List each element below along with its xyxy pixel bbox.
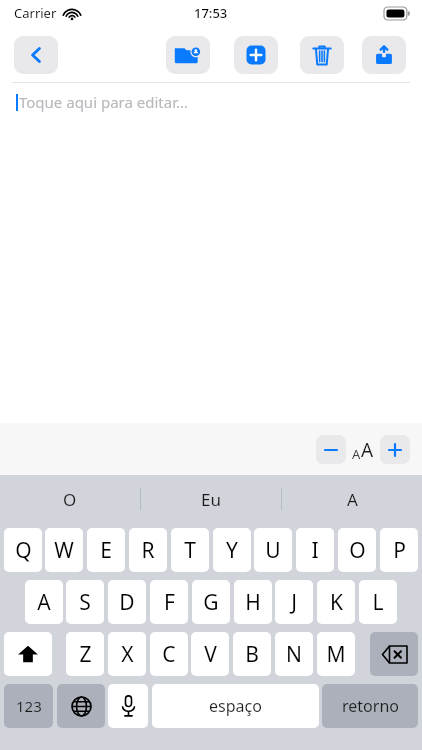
staticText: A [361,437,374,463]
staticText: retorno [342,695,399,717]
button[interactable]: Increase text size [380,435,410,464]
button[interactable]: L [359,580,397,624]
staticText: F [164,588,175,617]
button[interactable]: V [191,632,229,676]
button[interactable]: M [317,632,355,676]
staticText: X [121,640,134,669]
button[interactable]: S [66,580,104,624]
button[interactable]: C [150,632,188,676]
staticText: S [79,588,91,617]
button[interactable]: U [254,528,292,572]
staticText: C [162,640,176,669]
button[interactable]: Backspace [370,632,418,676]
staticText: Y [226,536,238,565]
staticText: J [291,588,297,617]
button[interactable]: K [317,580,355,624]
button[interactable]: Delete [300,36,344,74]
button[interactable]: Q [4,528,42,572]
button[interactable]: T [171,528,209,572]
button[interactable]: Shift [4,632,52,676]
button[interactable]: H [234,580,272,624]
button[interactable]: G [192,580,230,624]
button[interactable]: Back [14,36,58,74]
button[interactable]: F [150,580,188,624]
staticText: R [141,536,155,565]
staticText: M [326,640,346,669]
staticText: 123 [16,696,42,716]
button[interactable]: Eu [141,475,281,523]
button[interactable]: Z [66,632,104,676]
staticText: B [245,640,259,669]
button[interactable]: I [296,528,334,572]
staticText: Z [79,640,92,669]
staticText: K [330,588,343,617]
staticText: espaço [209,695,262,717]
staticText: O [349,536,366,565]
staticText: N [286,640,302,669]
button[interactable]: N [275,632,313,676]
staticText: O [63,488,77,511]
staticText: U [265,536,281,565]
staticText: Carrier [14,4,57,22]
staticText: Toque aqui para editar... [19,92,188,112]
button[interactable]: R [129,528,167,572]
button[interactable]: O [338,528,376,572]
button[interactable]: Dictate [108,684,148,728]
staticText: A [352,445,361,463]
button[interactable]: D [108,580,146,624]
button[interactable]: P [380,528,418,572]
staticText: E [100,536,112,565]
button[interactable]: Decrease text size [316,435,346,464]
staticText: Eu [201,488,221,511]
button[interactable]: A [282,475,422,523]
staticText: 17:53 [194,4,228,22]
button[interactable]: espaço [152,684,319,728]
staticText: Q [15,536,32,565]
staticText: A [37,588,51,617]
button[interactable]: Add [234,36,278,74]
staticText: P [393,536,406,565]
staticText: D [119,588,135,617]
staticText: A [347,488,358,511]
button[interactable]: Change keyboard [57,684,105,728]
button[interactable]: J [275,580,313,624]
button[interactable]: X [108,632,146,676]
staticText: H [245,588,261,617]
staticText: L [372,588,384,617]
staticText: T [184,536,196,565]
button[interactable]: E [87,528,125,572]
button[interactable]: B [233,632,271,676]
staticText: W [54,536,74,565]
button[interactable]: Folder [166,36,210,74]
button[interactable]: retorno [322,684,418,728]
button[interactable]: 123 [4,684,53,728]
button[interactable]: A [25,580,63,624]
staticText: V [204,640,217,669]
button[interactable]: Y [213,528,251,572]
staticText: I [311,536,319,565]
staticText: G [203,588,219,617]
button[interactable]: W [45,528,83,572]
button[interactable]: Share [362,36,406,74]
button[interactable]: O [0,475,140,523]
